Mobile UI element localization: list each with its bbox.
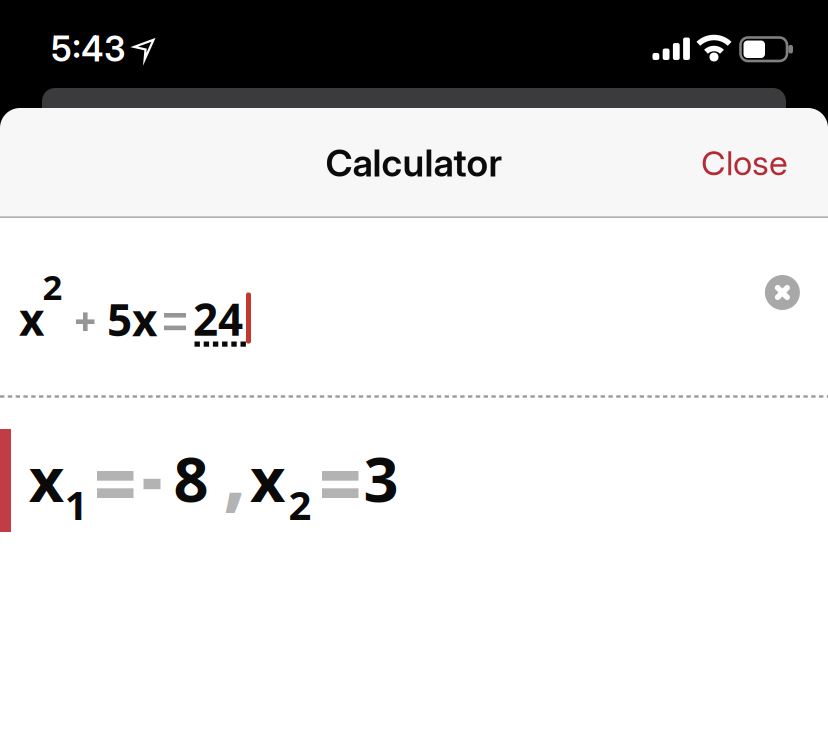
staticText: , [223, 415, 247, 525]
button[interactable]: Clear [765, 275, 800, 310]
staticText: 5x [107, 290, 157, 348]
staticText: 3 [363, 437, 398, 519]
staticText: 1 [65, 478, 88, 531]
staticText: Calculator [325, 140, 502, 186]
staticText: 24 [193, 289, 243, 348]
staticText: 2 [42, 263, 62, 309]
staticText: 5:43 [51, 28, 126, 70]
staticText: 2 [288, 478, 311, 531]
staticText: x [250, 437, 285, 519]
staticText: x [29, 437, 64, 519]
button[interactable]: Close [701, 142, 788, 183]
staticText: Close [701, 142, 788, 183]
staticText: x [19, 289, 44, 348]
staticText: 8 [173, 437, 208, 519]
